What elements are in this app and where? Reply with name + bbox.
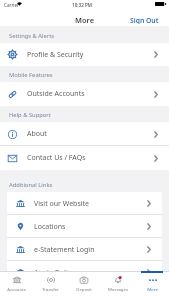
staticText: Additional Links	[9, 181, 53, 189]
button[interactable]: Apply Online	[7, 261, 162, 284]
staticText: Sign Out	[130, 16, 159, 24]
button[interactable]: About	[0, 122, 169, 146]
staticText: Contact Us / FAQs	[27, 153, 86, 163]
button[interactable]: Deposit	[67, 271, 101, 300]
staticText: Outside Accounts	[27, 89, 85, 99]
button[interactable]: Messages	[101, 271, 135, 300]
staticText: Accounts	[7, 286, 26, 292]
button[interactable]: More	[135, 271, 169, 300]
staticText: Deposit	[76, 286, 92, 292]
staticText: Help & Support	[9, 111, 51, 119]
button[interactable]: Transfer	[33, 271, 67, 300]
button[interactable]: Contact Us / FAQs	[0, 146, 169, 170]
staticText: Profile & Security	[27, 50, 84, 60]
button[interactable]: Profile & Security	[0, 43, 169, 66]
button[interactable]: Visit our Website	[7, 192, 162, 215]
staticText: Visit our Website	[34, 199, 90, 209]
staticText: More	[75, 15, 95, 25]
staticText: More	[147, 286, 158, 292]
button[interactable]: e-Statement Login	[7, 238, 162, 261]
staticText: Messages	[108, 286, 128, 292]
staticText: Locations	[34, 222, 66, 232]
staticText: e-Statement Login	[34, 245, 95, 255]
staticText: Apply Online	[34, 268, 76, 278]
staticText: Mobile Features	[9, 71, 53, 79]
staticText: About	[27, 129, 47, 139]
staticText: Transfer	[42, 286, 59, 292]
staticText: 10:32 PM	[72, 2, 92, 8]
staticText: Carrier	[4, 2, 19, 8]
button[interactable]: Accounts	[0, 271, 33, 300]
button[interactable]: Locations	[7, 215, 162, 238]
button[interactable]: Outside Accounts	[0, 82, 169, 106]
staticText: Settings & Alerts	[9, 32, 55, 40]
button[interactable]: Sign Out	[124, 13, 169, 26]
